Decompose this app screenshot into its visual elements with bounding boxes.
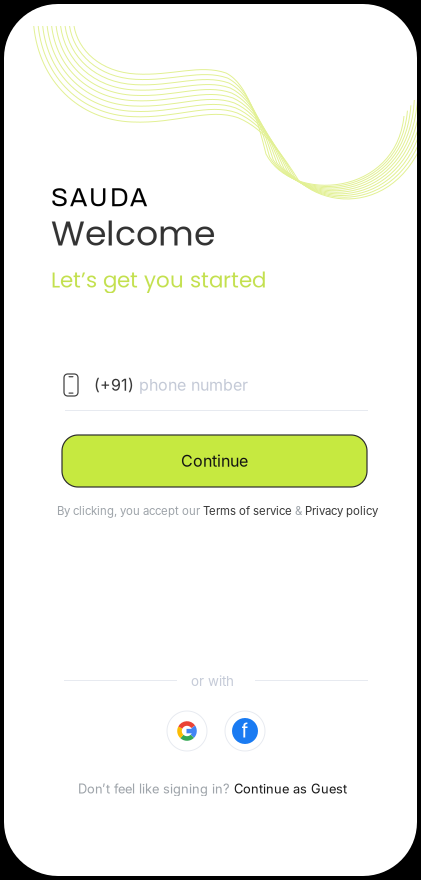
button[interactable]: Continue as Guest bbox=[234, 781, 347, 796]
staticText: Let’s get you started bbox=[51, 265, 266, 295]
staticText: Privacy policy bbox=[305, 504, 378, 518]
staticText: f bbox=[241, 716, 248, 744]
staticText: Continue as Guest bbox=[234, 781, 347, 796]
button[interactable]: Continue bbox=[62, 435, 367, 487]
button[interactable]: Continue with Facebook bbox=[225, 711, 265, 751]
staticText: By clicking, you accept our bbox=[57, 504, 203, 518]
staticText: Continue bbox=[181, 451, 248, 471]
staticText: SAUDA bbox=[51, 184, 147, 212]
staticText: Welcome bbox=[51, 209, 215, 257]
staticText: or with bbox=[191, 673, 234, 689]
button[interactable]: Continue with Google bbox=[167, 711, 207, 751]
staticText: Terms of service bbox=[203, 504, 292, 518]
staticText: Don’t feel like signing in? bbox=[78, 781, 234, 796]
staticText: phone number bbox=[139, 375, 248, 395]
staticText: (+91) bbox=[94, 375, 134, 395]
staticText: & bbox=[292, 504, 305, 518]
